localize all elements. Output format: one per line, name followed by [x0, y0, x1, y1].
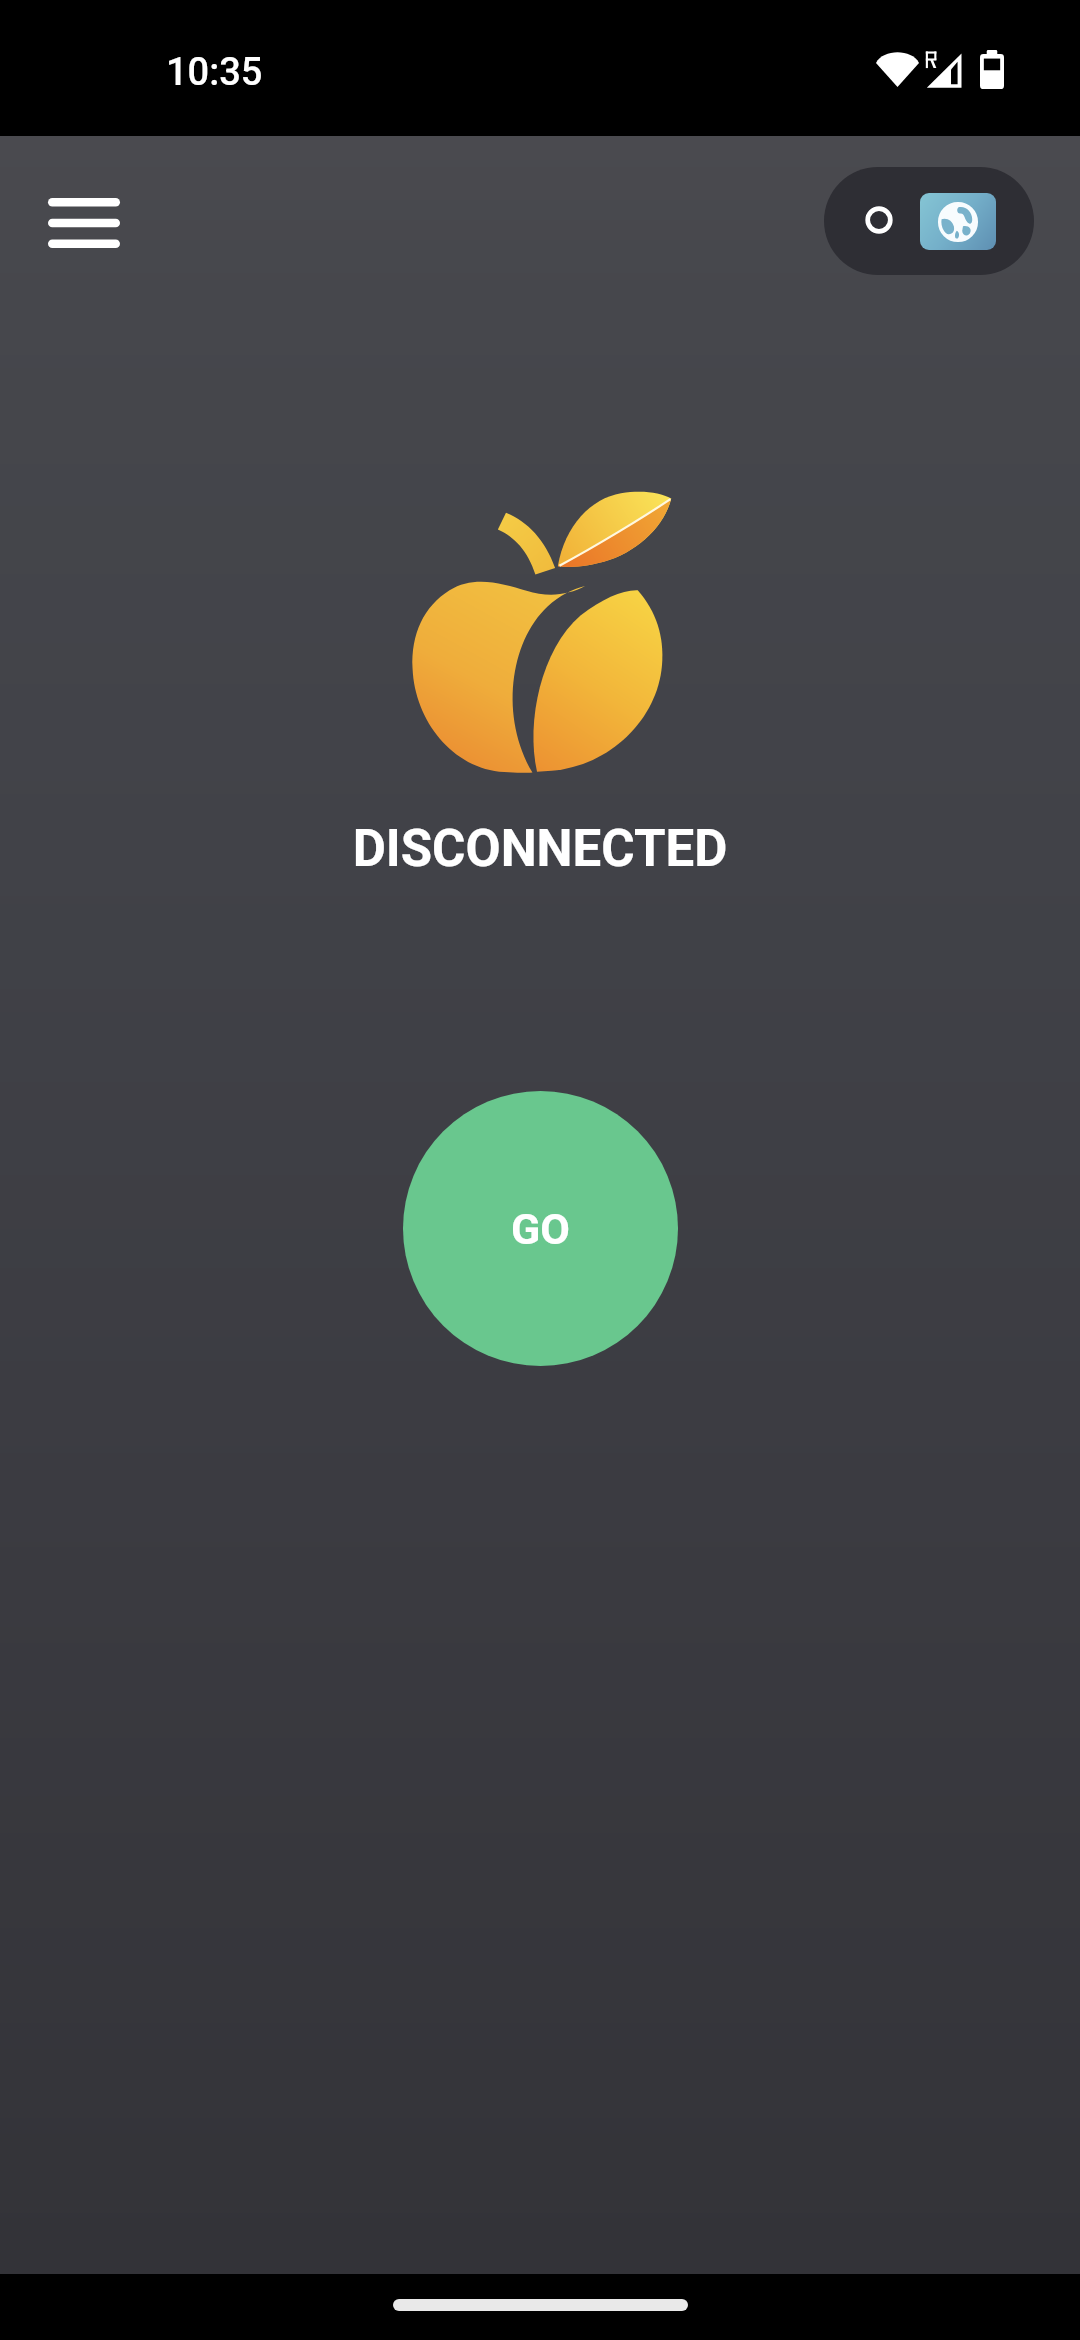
button[interactable]: Choose region — [920, 193, 996, 250]
button[interactable]: Turn VPN off — [837, 178, 921, 262]
button[interactable]: Open navigation menu — [18, 167, 150, 279]
staticText: 10:35 — [166, 50, 263, 95]
staticText: GO — [511, 1204, 570, 1254]
staticText: DISCONNECTED — [0, 819, 1080, 879]
button[interactable]: GO — [403, 1091, 678, 1366]
